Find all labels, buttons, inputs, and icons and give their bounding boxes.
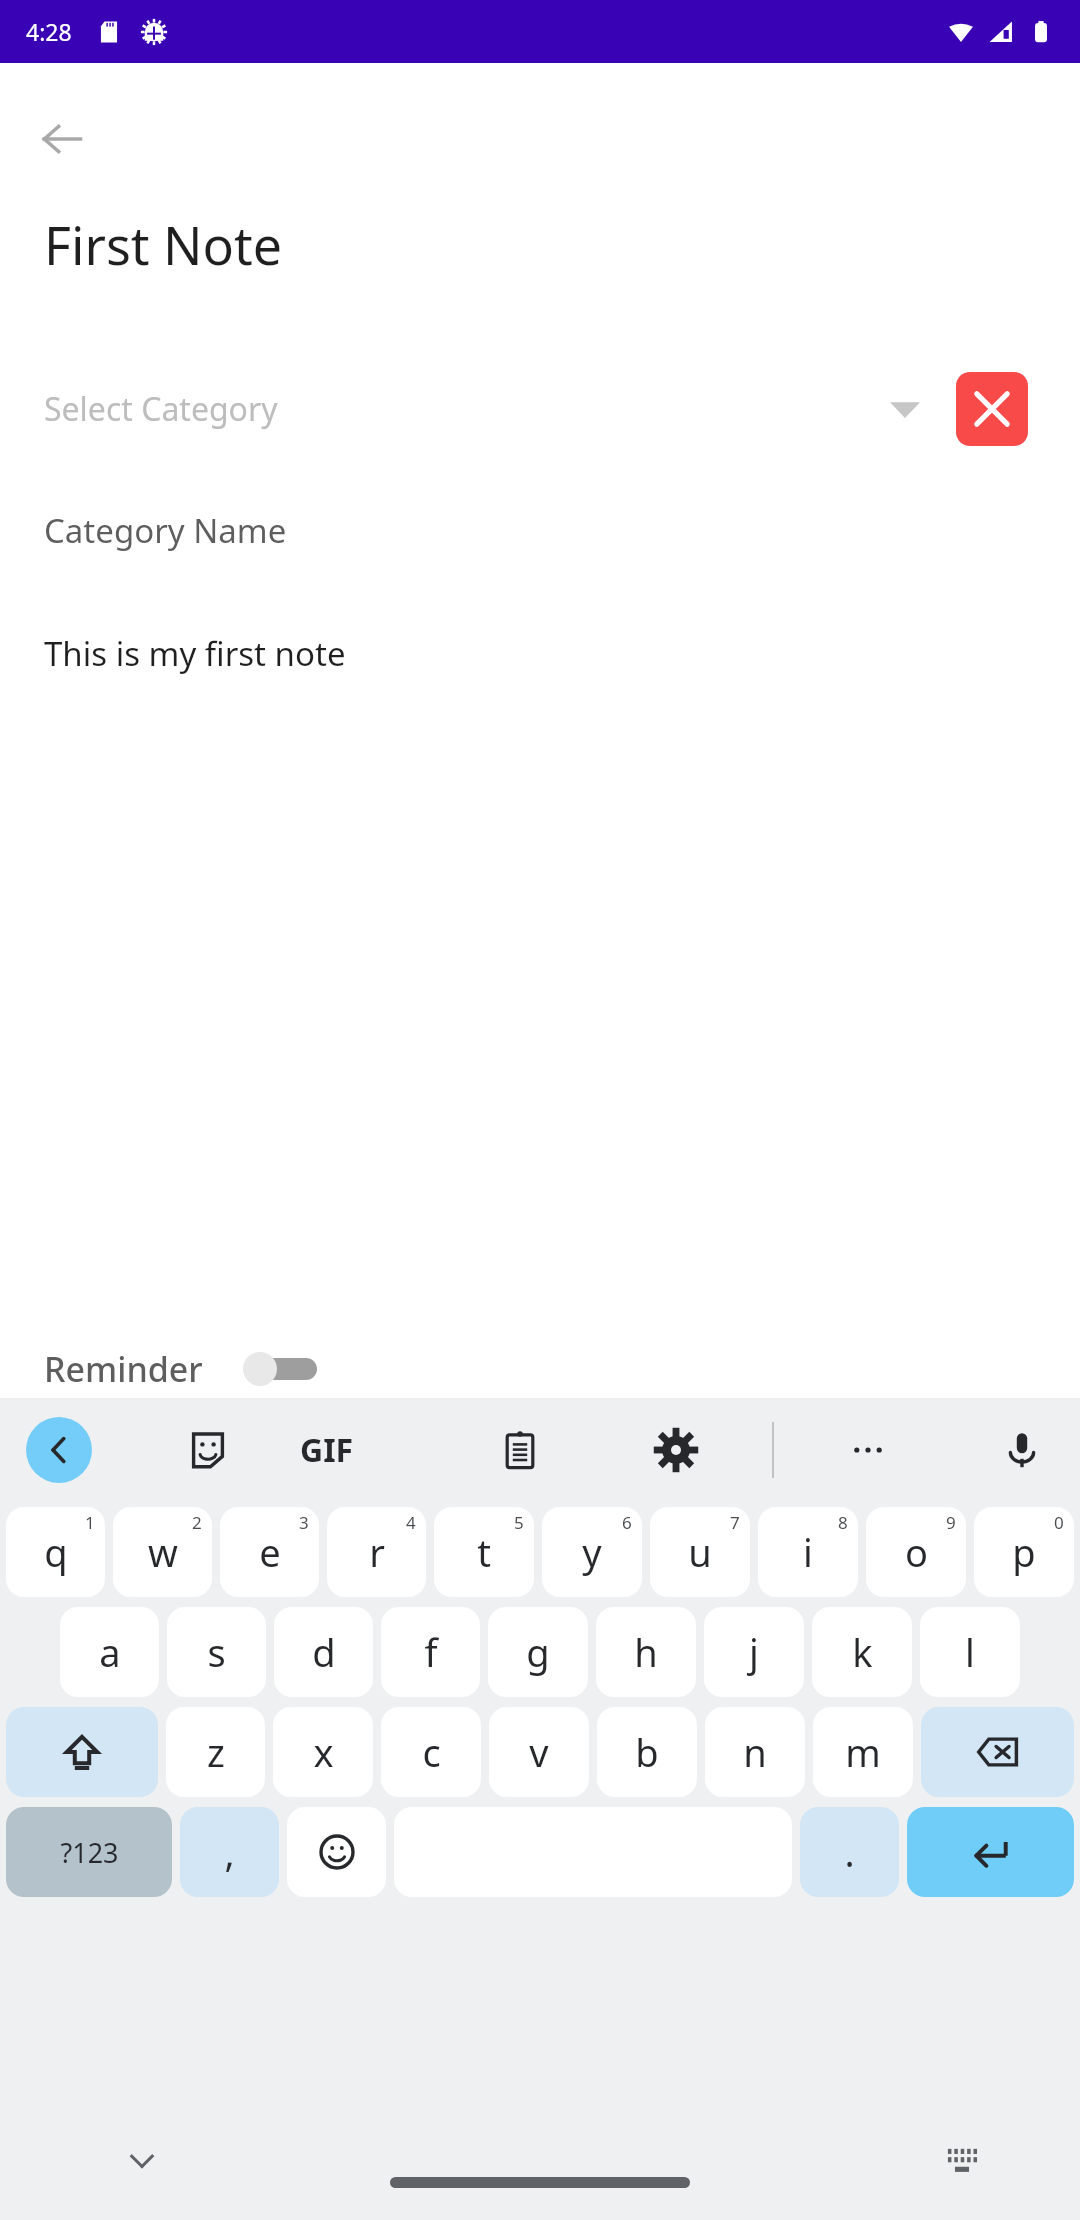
staticText: r — [369, 1526, 385, 1578]
staticText: y — [582, 1526, 602, 1578]
button[interactable]: Select Category — [44, 376, 956, 442]
staticText: 9 — [946, 1511, 956, 1534]
staticText: i — [803, 1526, 813, 1578]
button[interactable]: a — [60, 1607, 159, 1697]
button[interactable]: GIF — [300, 1428, 354, 1472]
button[interactable]: p — [974, 1507, 1074, 1597]
button[interactable]: f — [381, 1607, 480, 1697]
button[interactable]: s — [167, 1607, 266, 1697]
button[interactable] — [921, 1707, 1074, 1797]
staticText: l — [965, 1626, 975, 1678]
button[interactable]: q — [6, 1507, 105, 1597]
button[interactable]: d — [274, 1607, 373, 1697]
button[interactable]: y — [542, 1507, 642, 1597]
staticText: x — [313, 1726, 334, 1778]
staticText: s — [207, 1626, 226, 1678]
staticText: 7 — [730, 1511, 740, 1534]
staticText: b — [635, 1726, 659, 1778]
button[interactable]: w — [113, 1507, 212, 1597]
staticText: 4 — [406, 1511, 416, 1534]
button[interactable]: j — [704, 1607, 804, 1697]
button[interactable]: This is my first note — [44, 631, 1080, 676]
button[interactable]: ?123 — [6, 1807, 172, 1897]
button[interactable]: Switch keyboard — [932, 2131, 992, 2191]
button[interactable]: n — [705, 1707, 805, 1797]
staticText: 8 — [838, 1511, 848, 1534]
button[interactable]: Stickers — [176, 1418, 240, 1482]
button[interactable]: o — [866, 1507, 966, 1597]
staticText: w — [148, 1526, 178, 1578]
staticText: m — [845, 1726, 881, 1778]
staticText: j — [749, 1626, 759, 1678]
button[interactable]: z — [166, 1707, 265, 1797]
staticText: g — [526, 1626, 550, 1678]
button[interactable]: . — [800, 1807, 899, 1897]
button[interactable]: More options — [836, 1418, 900, 1482]
staticText: 1 — [85, 1511, 95, 1534]
staticText: ?123 — [60, 1834, 119, 1871]
staticText: k — [852, 1626, 873, 1678]
button[interactable]: Clipboard — [488, 1418, 552, 1482]
staticText: h — [634, 1626, 658, 1678]
staticText: q — [44, 1526, 68, 1578]
staticText: v — [529, 1726, 549, 1778]
button[interactable]: u — [650, 1507, 750, 1597]
staticText: 5 — [514, 1511, 524, 1534]
staticText: 3 — [299, 1511, 309, 1534]
button[interactable]: Hide keyboard — [112, 2131, 172, 2191]
staticText: First Note — [44, 209, 283, 280]
button[interactable]: l — [920, 1607, 1020, 1697]
button[interactable]: k — [812, 1607, 912, 1697]
staticText: 2 — [192, 1511, 202, 1534]
button[interactable] — [907, 1807, 1074, 1897]
staticText: t — [477, 1526, 491, 1578]
button[interactable]: h — [596, 1607, 696, 1697]
staticText: u — [688, 1526, 712, 1578]
staticText: f — [424, 1626, 438, 1678]
staticText: p — [1012, 1526, 1036, 1578]
staticText: e — [259, 1526, 281, 1578]
button[interactable] — [6, 1707, 158, 1797]
staticText: 6 — [622, 1511, 632, 1534]
button[interactable]: x — [273, 1707, 373, 1797]
button[interactable]: Close toolbar — [26, 1417, 92, 1483]
button[interactable]: t — [434, 1507, 534, 1597]
staticText: , — [224, 1826, 235, 1878]
staticText: a — [99, 1626, 121, 1678]
staticText: c — [422, 1726, 441, 1778]
button[interactable]: , — [180, 1807, 279, 1897]
staticText: o — [905, 1526, 928, 1578]
staticText: Select Category — [44, 387, 278, 431]
button[interactable]: Keyboard settings — [644, 1418, 708, 1482]
button[interactable]: r — [327, 1507, 426, 1597]
staticText: . — [844, 1826, 855, 1878]
staticText: Reminder — [44, 1346, 203, 1392]
button[interactable]: Back — [34, 111, 90, 167]
button[interactable]: Voice input — [990, 1418, 1054, 1482]
button[interactable]: Category Name — [44, 508, 1080, 553]
button[interactable] — [243, 1352, 321, 1386]
staticText: z — [207, 1726, 225, 1778]
button[interactable] — [287, 1807, 386, 1897]
staticText: d — [312, 1626, 336, 1678]
button[interactable]: v — [489, 1707, 589, 1797]
button[interactable]: e — [220, 1507, 319, 1597]
button[interactable]: g — [488, 1607, 588, 1697]
button[interactable]: c — [381, 1707, 481, 1797]
staticText: n — [743, 1726, 767, 1778]
button[interactable]: m — [813, 1707, 913, 1797]
button[interactable]: Clear category — [956, 372, 1028, 446]
staticText: 4:28 — [26, 16, 72, 47]
button[interactable]: b — [597, 1707, 697, 1797]
button[interactable]: i — [758, 1507, 858, 1597]
staticText: 0 — [1054, 1511, 1064, 1534]
